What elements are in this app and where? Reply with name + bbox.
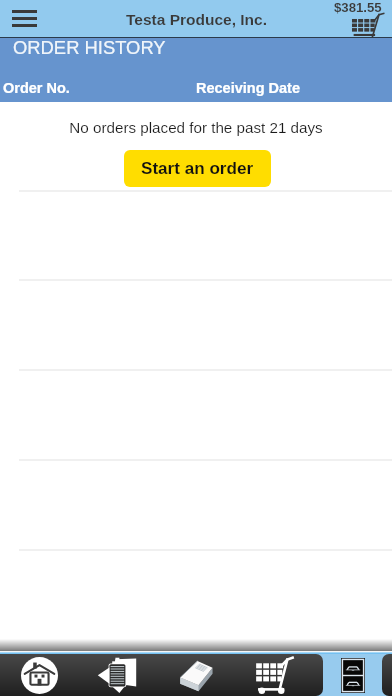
- staticText: Order No.: [3, 80, 70, 96]
- staticText: $381.55: [334, 0, 382, 15]
- staticText: Testa Produce, Inc.: [126, 11, 267, 28]
- button[interactable]: Catalog: [157, 654, 235, 696]
- button[interactable]: Start an order: [124, 150, 271, 187]
- button[interactable]: History: [314, 654, 392, 696]
- staticText: Start an order: [141, 159, 254, 178]
- staticText: Receiving Date: [196, 80, 300, 96]
- button[interactable]: Cart: [235, 654, 313, 696]
- button[interactable]: Menu: [6, 0, 43, 37]
- staticText: ORDER HISTORY: [13, 37, 166, 58]
- staticText: No orders placed for the past 21 days: [0, 119, 392, 136]
- button[interactable]: Orders: [78, 654, 156, 696]
- button[interactable]: Cart: [330, 0, 392, 37]
- button[interactable]: Home: [0, 654, 78, 696]
